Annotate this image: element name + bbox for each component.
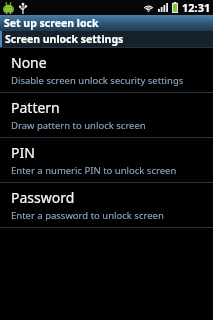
staticText: Enter a numeric PIN to unlock screen	[11, 164, 177, 177]
staticText: None	[11, 53, 47, 72]
other: Android notification	[3, 2, 14, 14]
other: USB connected	[19, 3, 27, 14]
button[interactable]: Password	[0, 183, 213, 227]
staticText: Pattern	[11, 98, 60, 117]
staticText: Set up screen lock	[4, 16, 99, 30]
button[interactable]: Pattern	[0, 93, 213, 137]
staticText: PIN	[11, 143, 35, 162]
staticText: Screen unlock settings	[5, 32, 124, 46]
button[interactable]: None	[0, 48, 213, 92]
other: Mobile signal	[158, 3, 168, 12]
staticText: 12:31	[182, 0, 211, 15]
staticText: Enter a password to unlock screen	[11, 209, 164, 222]
other: Wi-Fi signal	[143, 3, 154, 12]
staticText: Password	[11, 188, 75, 207]
staticText: Disable screen unlock security settings	[11, 74, 184, 87]
staticText: Draw pattern to unlock screen	[11, 119, 146, 132]
button[interactable]: PIN	[0, 138, 213, 182]
other: Battery	[172, 2, 178, 13]
